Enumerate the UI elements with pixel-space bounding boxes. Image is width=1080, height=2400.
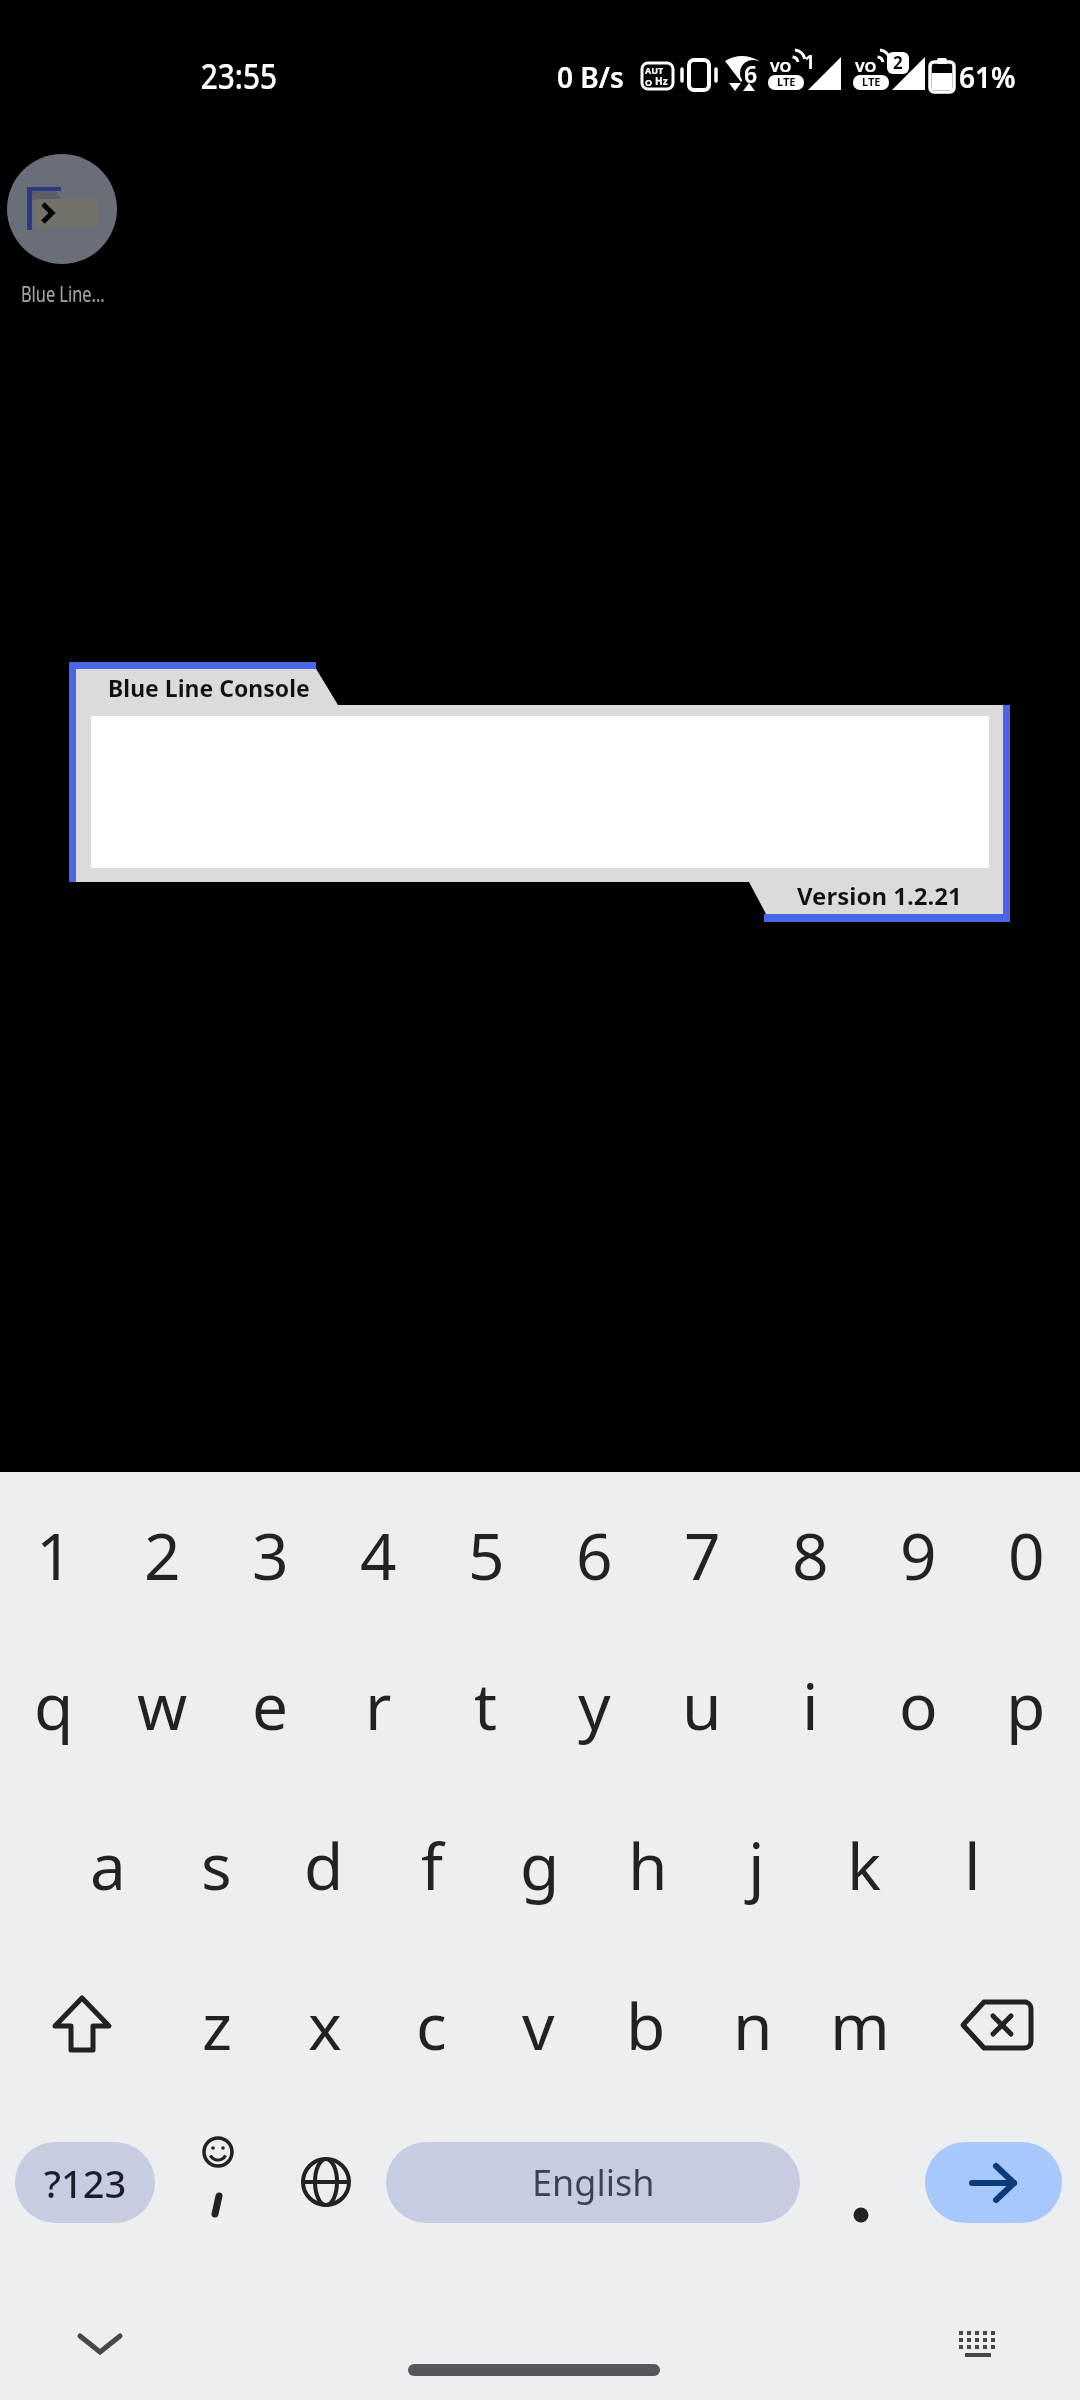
staticText: AUTO — [645, 64, 670, 88]
button[interactable]: a — [54, 1790, 162, 1940]
staticText: 9 — [900, 1512, 937, 1599]
staticText: g — [520, 1822, 560, 1909]
button[interactable]: f — [378, 1790, 486, 1940]
button[interactable]: y — [540, 1630, 648, 1780]
button[interactable]: ?123 — [15, 2142, 155, 2223]
staticText: 6 — [744, 58, 758, 89]
button[interactable]: c — [378, 1950, 485, 2100]
button[interactable]: 0 — [972, 1480, 1080, 1630]
button[interactable]: j — [702, 1790, 810, 1940]
staticText: 23:55 — [201, 52, 277, 100]
button[interactable]: o — [864, 1630, 972, 1780]
button[interactable]: s — [162, 1790, 270, 1940]
staticText: t — [474, 1662, 498, 1749]
staticText: 5 — [468, 1512, 505, 1599]
button[interactable] — [60, 2322, 140, 2366]
button[interactable]: m — [806, 1950, 913, 2100]
button[interactable]: w — [108, 1630, 216, 1780]
button[interactable]: h — [594, 1790, 702, 1940]
staticText: j — [748, 1822, 765, 1909]
button[interactable]: 2 — [108, 1480, 216, 1630]
button[interactable]: k — [810, 1790, 918, 1940]
staticText: 3 — [252, 1512, 289, 1599]
staticText: d — [304, 1822, 344, 1909]
staticText: English — [532, 2158, 655, 2207]
button[interactable]: 3 — [216, 1480, 324, 1630]
staticText: w — [137, 1662, 188, 1749]
staticText: q — [34, 1662, 74, 1749]
staticText: b — [626, 1982, 666, 2069]
button[interactable] — [940, 2322, 1016, 2366]
button[interactable]: x — [271, 1950, 378, 2100]
button[interactable]: b — [592, 1950, 699, 2100]
button[interactable] — [925, 2142, 1062, 2223]
staticText: Blue Line Console — [108, 672, 310, 703]
staticText: Version 1.2.21 — [797, 879, 962, 912]
staticText: 0 B/s — [557, 58, 624, 96]
staticText: y — [578, 1662, 611, 1749]
staticText: LTE — [777, 74, 796, 89]
staticText: z — [202, 1982, 233, 2069]
staticText: x — [308, 1982, 342, 2069]
button[interactable]: 9 — [864, 1480, 972, 1630]
staticText: c — [416, 1982, 447, 2069]
staticText: 1 — [804, 48, 816, 75]
staticText: f — [421, 1822, 444, 1909]
staticText: 0 — [1008, 1512, 1045, 1599]
button[interactable]: v — [485, 1950, 592, 2100]
staticText: 7 — [684, 1512, 721, 1599]
button[interactable] — [913, 1950, 1080, 2100]
staticText: o — [899, 1662, 938, 1749]
staticText: e — [252, 1662, 289, 1749]
button[interactable] — [0, 1950, 164, 2100]
staticText: l — [964, 1822, 981, 1909]
button[interactable]: 7 — [648, 1480, 756, 1630]
button[interactable] — [408, 2364, 660, 2376]
staticText: v — [522, 1982, 555, 2069]
button[interactable]: p — [972, 1630, 1080, 1780]
button[interactable]: English — [386, 2142, 800, 2223]
button[interactable]: n — [699, 1950, 806, 2100]
button[interactable]: g — [486, 1790, 594, 1940]
button[interactable]: q — [0, 1630, 108, 1780]
staticText: n — [733, 1982, 773, 2069]
staticText: k — [847, 1822, 882, 1909]
staticText: r — [365, 1662, 392, 1749]
staticText: ?123 — [44, 2157, 127, 2209]
staticText: 2 — [144, 1512, 181, 1599]
staticText: 6 — [576, 1512, 613, 1599]
staticText: 4 — [360, 1512, 397, 1599]
staticText: m — [830, 1982, 890, 2069]
button[interactable]: d — [270, 1790, 378, 1940]
button[interactable]: z — [164, 1950, 271, 2100]
staticText: 8 — [792, 1512, 829, 1599]
button[interactable]: 6 — [540, 1480, 648, 1630]
staticText: LTE — [862, 74, 881, 89]
staticText: a — [90, 1822, 126, 1909]
button[interactable]: r — [324, 1630, 432, 1780]
button[interactable]: 5 — [432, 1480, 540, 1630]
button[interactable]: 4 — [324, 1480, 432, 1630]
button[interactable]: 8 — [756, 1480, 864, 1630]
staticText: Hz — [655, 74, 668, 88]
button[interactable]: l — [918, 1790, 1026, 1940]
button[interactable]: t — [432, 1630, 540, 1780]
staticText: p — [1006, 1662, 1046, 1749]
staticText: VO — [855, 56, 877, 76]
button[interactable]: e — [216, 1630, 324, 1780]
staticText: h — [628, 1822, 668, 1909]
button[interactable] — [276, 2127, 376, 2237]
staticText: i — [802, 1662, 819, 1749]
button[interactable]: u — [648, 1630, 756, 1780]
button[interactable]: 1 — [0, 1480, 108, 1630]
button[interactable]: i — [756, 1630, 864, 1780]
staticText: 61% — [959, 58, 1016, 96]
staticText: s — [201, 1822, 232, 1909]
staticText: VO — [770, 56, 792, 76]
button[interactable] — [160, 2127, 276, 2237]
staticText: 1 — [36, 1512, 73, 1599]
staticText: 2 — [893, 51, 903, 74]
button[interactable] — [810, 2127, 910, 2237]
staticText: Blue Line... — [21, 280, 105, 309]
